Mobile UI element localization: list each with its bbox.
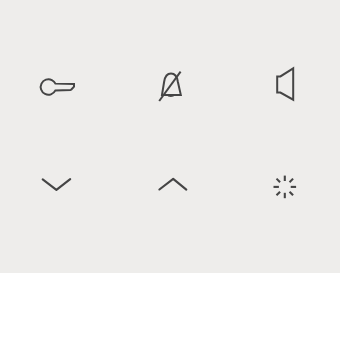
button[interactable]: Notifications off: [143, 58, 199, 114]
button[interactable]: Collapse: [28, 157, 84, 213]
button[interactable]: Brightness: [257, 159, 313, 215]
button[interactable]: Volume: [257, 56, 313, 112]
button[interactable]: Expand: [145, 157, 201, 213]
button[interactable]: Key: [28, 59, 84, 115]
